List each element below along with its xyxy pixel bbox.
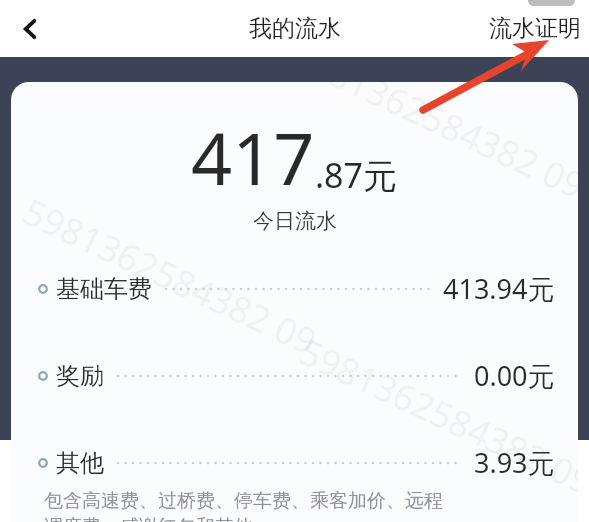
staticText: 413.94元 — [443, 270, 555, 307]
staticText: 包含高速费、过桥费、停车费、乘客加价、远程 — [44, 489, 443, 513]
staticText: 5981362584382 09 — [284, 82, 578, 210]
staticText: 5981362584382 09 — [292, 327, 578, 506]
button[interactable]: 其他 — [11, 444, 578, 481]
staticText: 我的流水 — [249, 14, 341, 43]
staticText: 417 — [191, 108, 315, 206]
staticText: 5981362584382 09 — [16, 187, 325, 366]
staticText: 调度费、感谢红包和其他 — [44, 515, 253, 522]
button[interactable]: 流水证明 — [481, 4, 589, 53]
staticText: 流水证明 — [489, 14, 581, 43]
button[interactable]: 奖励 — [11, 357, 578, 394]
staticText: 奖励 — [56, 361, 104, 391]
staticText: .87元 — [315, 152, 398, 198]
button[interactable]: Back — [3, 0, 57, 57]
staticText: 0.00元 — [474, 357, 555, 394]
staticText: 基础车费 — [56, 274, 152, 304]
staticText: 今日流水 — [253, 208, 337, 234]
button[interactable]: 基础车费 — [11, 270, 578, 307]
staticText: 3.93元 — [474, 444, 555, 481]
staticText: 其他 — [56, 448, 104, 478]
